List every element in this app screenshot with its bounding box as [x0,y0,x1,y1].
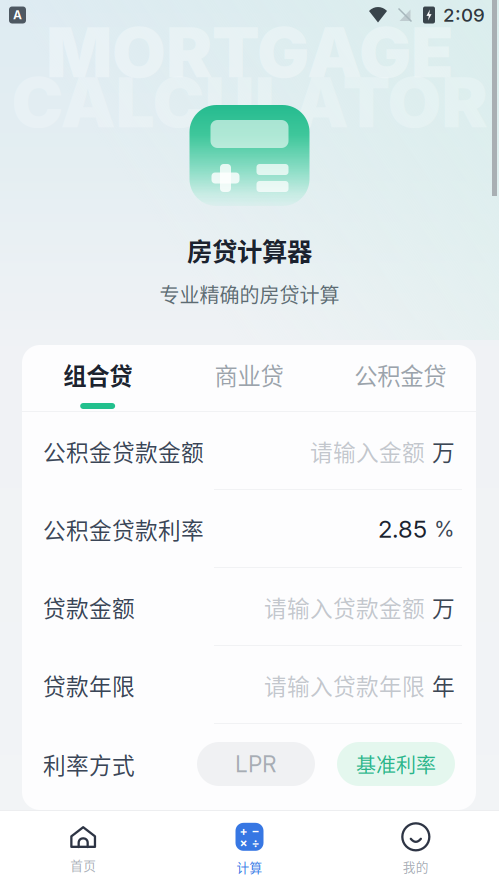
staticText: 公积金贷款金额 [43,435,204,467]
staticText: 专业精确的房贷计算 [159,279,339,308]
staticText: 基准利率 [356,749,436,778]
staticText: % [434,516,455,542]
staticText: 房贷计算器 [187,232,312,268]
staticText: × [239,836,247,850]
staticText: 利率方式 [43,748,135,780]
staticText: + [239,824,247,838]
staticText: 公积金贷款利率 [43,513,204,545]
staticText: 贷款金额 [43,591,135,623]
staticText: 商业贷 [214,358,283,392]
staticText: CALCULATOR [11,60,487,144]
staticText: 2.85 [378,514,427,543]
staticText: 首页 [70,856,96,874]
button[interactable]: 基准利率 [337,742,455,786]
button[interactable]: 我的 [333,811,499,888]
staticText: 我的 [403,857,429,876]
staticText: 请输入金额 [310,435,425,467]
staticText: 请输入贷款年限 [264,669,425,701]
button[interactable]: LPR [197,742,315,786]
button[interactable]: 组合贷 [22,345,173,412]
staticText: 万 [432,591,455,623]
staticText: 计算 [236,858,262,876]
staticText: ÷ [251,836,259,850]
button[interactable]: + [166,811,333,888]
staticText: LPR [235,750,277,778]
staticText: A [13,8,22,22]
staticText: 年 [432,669,455,701]
staticText: 组合贷 [63,358,132,392]
staticText: 2:09 [443,4,485,26]
button[interactable]: 商业贷 [173,345,325,412]
staticText: MORTGAGE [46,10,453,94]
staticText: 公积金贷 [354,358,446,392]
staticText: 贷款年限 [43,669,135,701]
staticText: – [252,824,258,838]
staticText: 请输入贷款金额 [264,591,425,623]
button[interactable]: 公积金贷 [325,345,476,412]
staticText: 万 [432,435,455,467]
button[interactable]: 首页 [0,811,166,888]
